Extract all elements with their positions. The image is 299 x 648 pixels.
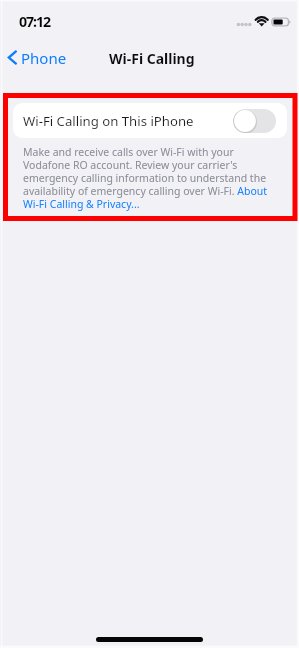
button[interactable]: Wi-Fi Calling on This iPhone [13, 103, 287, 138]
staticText: Wi-Fi Calling [109, 49, 195, 68]
button[interactable]: Wi-Fi Calling on This iPhone toggle [233, 109, 276, 133]
staticText: Phone [21, 48, 67, 68]
staticText: 07:12 [19, 12, 50, 31]
staticText: Wi-Fi Calling on This iPhone [23, 112, 194, 130]
button[interactable]: Make and receive calls over Wi-Fi with y… [23, 145, 281, 211]
button[interactable]: Phone [5, 45, 69, 71]
